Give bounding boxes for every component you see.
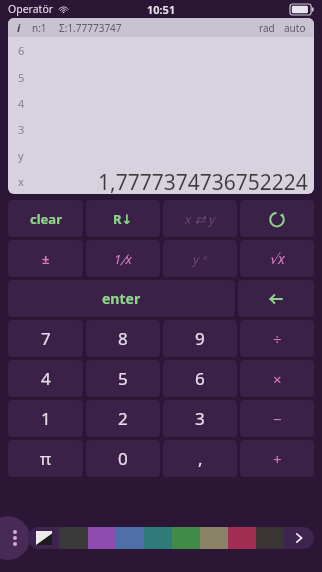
staticText: 1,7777374736752224 [98,168,308,194]
button[interactable]: Theme preview [28,527,59,549]
button[interactable]: y ˣ [163,240,237,277]
staticText: n:1 [32,21,47,35]
staticText: , [198,447,203,470]
staticText: clear [30,210,62,228]
button[interactable]: x ⇄ y [163,200,237,237]
staticText: + [273,449,282,469]
staticText: 1 [41,407,51,430]
button[interactable]: Undo [240,200,314,237]
staticText: i [17,20,21,35]
button[interactable]: 1∕x [86,240,160,277]
staticText: Operatör [8,2,54,16]
button[interactable]: 4 [8,360,83,397]
staticText: √x [269,249,285,268]
button[interactable]: × [240,360,314,397]
staticText: 2 [118,407,128,430]
staticText: rad [259,21,275,35]
button[interactable]: − [240,400,314,437]
staticText: 9 [195,327,205,350]
button[interactable]: π [8,440,83,477]
button[interactable]: √x [240,240,314,277]
staticText: enter [102,289,141,308]
button[interactable]: clear [8,200,83,237]
staticText: R↓ [113,210,133,228]
staticText: Σ:1.77773747 [59,21,122,35]
staticText: auto [284,21,306,35]
button[interactable]: Backspace [238,280,314,317]
staticText: − [273,409,282,429]
button[interactable]: ± [8,240,83,277]
staticText: 8 [118,327,128,350]
staticText: ÷ [273,329,282,349]
staticText: 3 [195,407,205,430]
staticText: 3 [18,122,25,137]
staticText: π [40,447,52,470]
button[interactable]: 6 [163,360,237,397]
staticText: 0 [118,447,128,470]
staticText: x ⇄ y [185,210,216,228]
staticText: 6 [18,43,25,58]
staticText: 1∕x [114,250,132,268]
staticText: 7 [41,327,51,350]
staticText: y [18,148,24,163]
button[interactable]: R↓ [86,200,160,237]
button[interactable]: enter [8,280,235,317]
button[interactable]: rad [259,21,275,35]
staticText: 4 [18,96,25,111]
button[interactable]: 3 [163,400,237,437]
button[interactable]: 2 [86,400,160,437]
staticText: y ˣ [193,250,207,268]
button[interactable]: , [163,440,237,477]
button[interactable]: More themes [284,527,314,549]
staticText: 10:51 [147,2,176,17]
button[interactable]: 0 [86,440,160,477]
button[interactable]: 1 [8,400,83,437]
button[interactable]: More options [0,516,30,560]
button[interactable]: 5 [86,360,160,397]
staticText: 4 [41,367,51,390]
staticText: 5 [118,367,128,390]
button[interactable]: + [240,440,314,477]
button[interactable]: i [16,20,22,35]
button[interactable]: 7 [8,320,83,357]
staticText: x [18,174,24,189]
staticText: 6 [195,367,205,390]
button[interactable]: ÷ [240,320,314,357]
button[interactable]: 9 [163,320,237,357]
button[interactable]: auto [284,21,306,35]
staticText: × [273,369,282,389]
staticText: ± [42,250,50,268]
staticText: 5 [18,70,25,85]
button[interactable]: 8 [86,320,160,357]
